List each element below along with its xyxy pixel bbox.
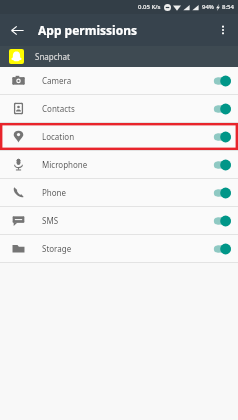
staticText: 94% xyxy=(202,3,214,11)
button[interactable]: SMS xyxy=(0,207,238,234)
staticText: 0.05 K/s xyxy=(138,3,161,11)
button[interactable]: More options xyxy=(211,18,235,42)
button[interactable]: Phone xyxy=(0,179,238,206)
staticText: 8:54 xyxy=(222,3,234,11)
staticText: Contacts xyxy=(42,103,75,114)
staticText: Storage xyxy=(42,243,72,254)
button[interactable]: Contacts xyxy=(0,95,238,122)
staticText: Location xyxy=(42,131,75,142)
staticText: Microphone xyxy=(42,159,88,170)
staticText: Snapchat xyxy=(35,51,70,62)
staticText: SMS xyxy=(42,215,59,226)
button[interactable]: Location xyxy=(0,123,238,150)
staticText: Phone xyxy=(42,187,67,198)
staticText: Camera xyxy=(42,75,72,86)
button[interactable]: Back xyxy=(5,18,29,42)
button[interactable]: Snapchat xyxy=(0,46,238,67)
button[interactable]: Microphone xyxy=(0,151,238,178)
button[interactable]: Camera xyxy=(0,67,238,94)
staticText: App permissions xyxy=(38,22,137,38)
button[interactable]: Storage xyxy=(0,235,238,262)
